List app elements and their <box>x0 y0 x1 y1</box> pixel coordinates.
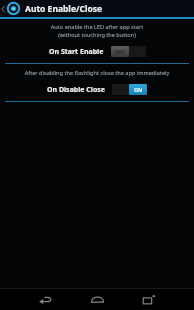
staticText: ON <box>134 86 143 93</box>
button[interactable]: Recent apps <box>123 288 175 310</box>
staticText: OFF <box>115 48 125 55</box>
button[interactable]: Enabled <box>112 84 147 95</box>
staticText: On Start Enable <box>49 47 104 57</box>
staticText: Auto enable the LED after app start (wit… <box>8 23 186 39</box>
staticText: After disabling the flashlight close the… <box>8 69 186 77</box>
staticText: Auto Enable/Close <box>25 3 103 15</box>
button[interactable]: On Start Enable <box>45 44 150 59</box>
button[interactable]: Disabled <box>111 46 146 57</box>
button[interactable]: Back <box>19 288 71 310</box>
button[interactable]: Navigate up <box>0 0 21 17</box>
button[interactable]: On Disable Close <box>43 82 151 97</box>
staticText: On Disable Close <box>47 85 105 95</box>
button[interactable]: Home <box>71 288 123 310</box>
